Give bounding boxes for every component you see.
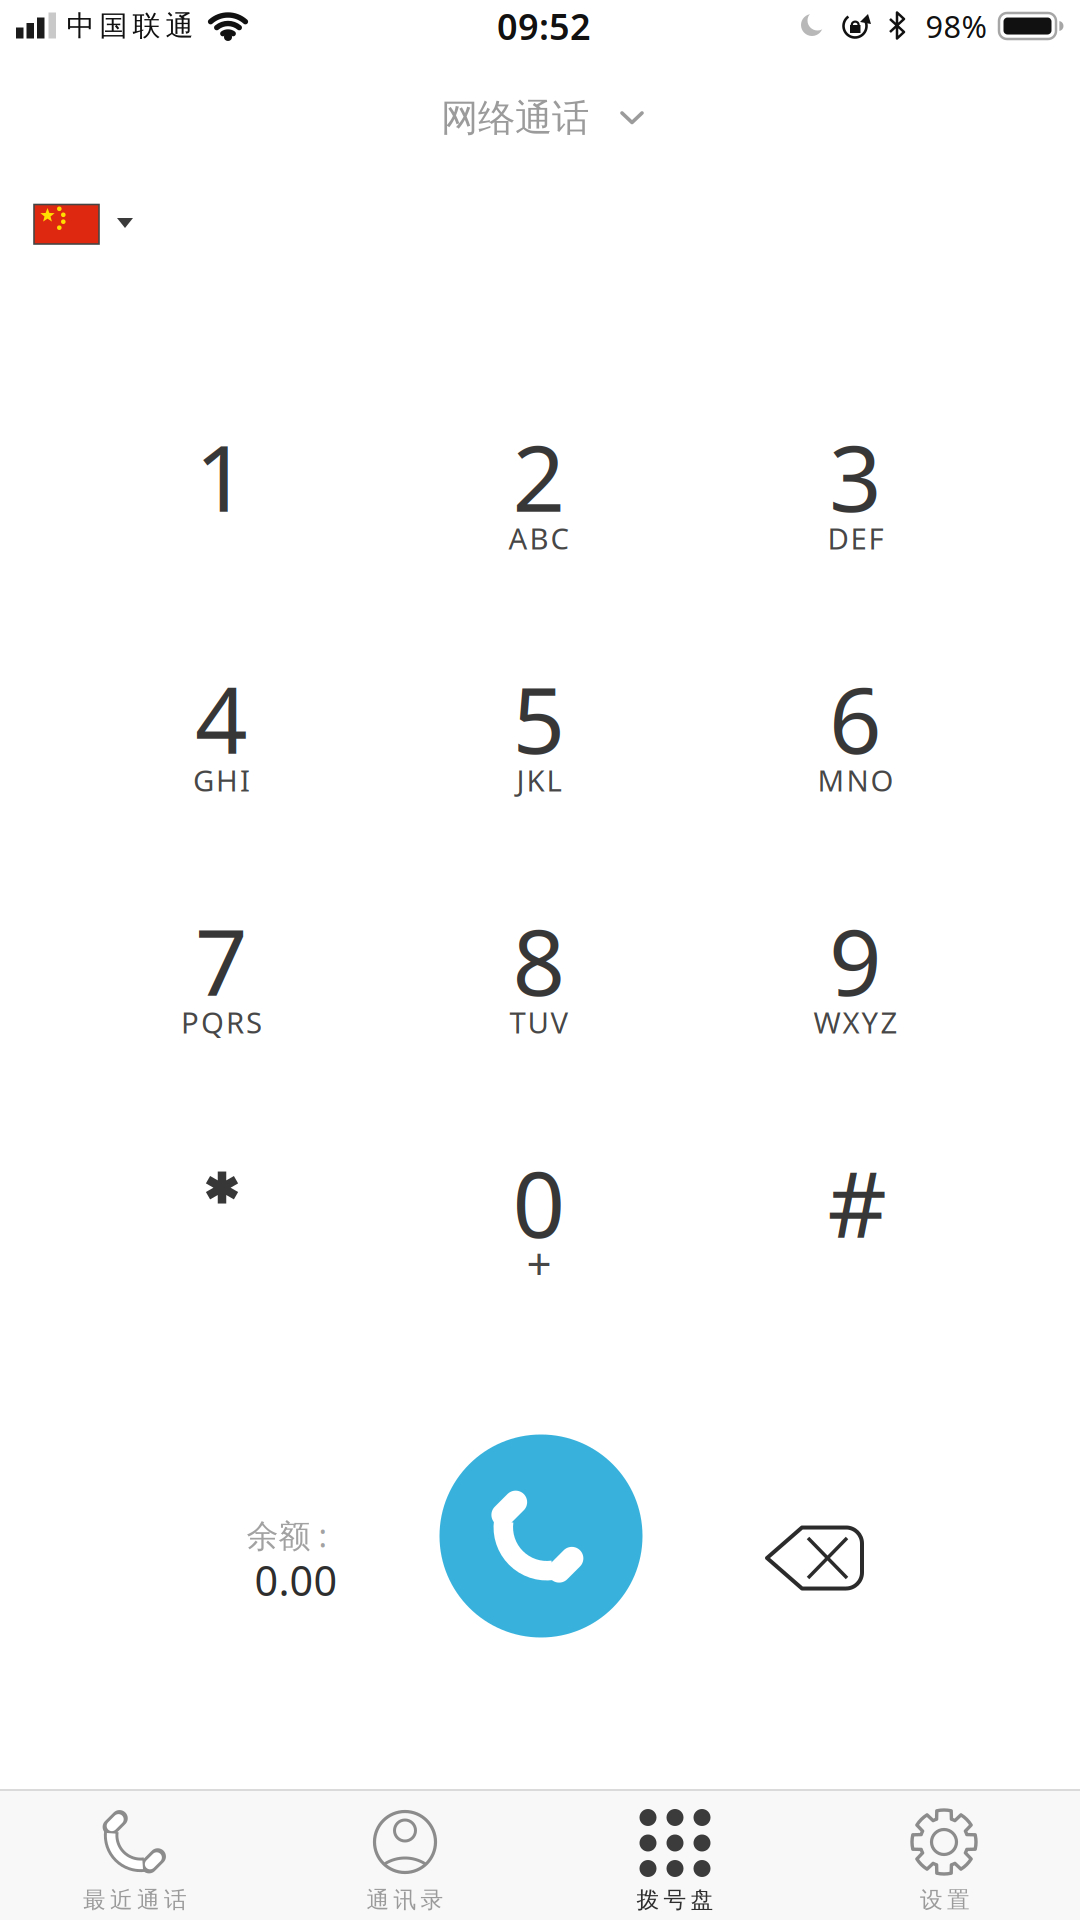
staticText: MNO bbox=[817, 760, 893, 799]
staticText: 7 bbox=[195, 899, 248, 1021]
button[interactable]: * bbox=[102, 1111, 342, 1311]
button[interactable]: 4 bbox=[101, 645, 341, 845]
staticText: 中国联通 bbox=[66, 9, 193, 43]
staticText: ABC bbox=[508, 518, 569, 557]
staticText: 2 bbox=[512, 415, 565, 537]
staticText: 设置 bbox=[920, 1886, 970, 1914]
staticText: 网络通话 bbox=[441, 95, 589, 141]
staticText: # bbox=[827, 1141, 886, 1263]
staticText: PQRS bbox=[181, 1002, 262, 1041]
staticText: 通讯录 bbox=[366, 1886, 443, 1914]
button[interactable]: 9 bbox=[735, 887, 975, 1087]
staticText: 余额 : bbox=[246, 1514, 327, 1556]
staticText: 0 bbox=[512, 1141, 565, 1263]
button[interactable]: 7 bbox=[101, 887, 341, 1087]
button[interactable]: 2 bbox=[419, 403, 659, 603]
button[interactable]: 5 bbox=[419, 645, 659, 845]
staticText: 3 bbox=[829, 415, 882, 537]
button[interactable]: 8 bbox=[419, 887, 659, 1087]
staticText: 6 bbox=[829, 657, 882, 779]
staticText: 1 bbox=[195, 415, 248, 537]
staticText: GHI bbox=[193, 760, 250, 799]
staticText: 98% bbox=[925, 6, 986, 46]
staticText: 8 bbox=[512, 899, 565, 1021]
staticText: 5 bbox=[512, 657, 565, 779]
button[interactable]: 拨号盘 bbox=[540, 1791, 810, 1920]
button[interactable]: 6 bbox=[735, 645, 975, 845]
button[interactable]: # bbox=[737, 1129, 977, 1329]
staticText: 最近通话 bbox=[83, 1886, 187, 1914]
button[interactable]: 最近通话 bbox=[0, 1791, 270, 1920]
staticText: 9 bbox=[829, 899, 882, 1021]
button[interactable]: 网络通话 bbox=[419, 94, 659, 140]
staticText: JKL bbox=[516, 760, 561, 799]
staticText: 拨号盘 bbox=[636, 1886, 713, 1914]
staticText: 0.00 bbox=[254, 1553, 337, 1607]
staticText: 4 bbox=[195, 657, 248, 779]
staticText: TUV bbox=[509, 1002, 568, 1041]
staticText: WXYZ bbox=[813, 1002, 897, 1041]
button[interactable]: Select country bbox=[34, 204, 134, 244]
button[interactable]: Delete bbox=[765, 1526, 865, 1590]
button[interactable]: 设置 bbox=[810, 1791, 1080, 1920]
button[interactable]: 3 bbox=[735, 403, 975, 603]
staticText: + bbox=[526, 1234, 551, 1292]
button[interactable]: Call bbox=[439, 1434, 642, 1637]
button[interactable]: 通讯录 bbox=[270, 1791, 540, 1920]
staticText: DEF bbox=[827, 518, 883, 557]
button[interactable]: 1 bbox=[101, 403, 341, 603]
button[interactable]: 0 bbox=[419, 1129, 659, 1329]
staticText: 09:52 bbox=[497, 2, 591, 50]
